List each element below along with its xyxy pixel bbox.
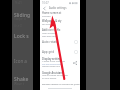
staticText: new apps here — [42, 35, 56, 38]
staticText: Icon a — [14, 58, 27, 64]
staticText: Shake — [14, 76, 29, 83]
button[interactable]: App grid — [40, 49, 80, 55]
staticText: Sliding — [14, 12, 31, 19]
staticText: Home screen st — [42, 11, 62, 15]
button[interactable]: Wallpaper & sty — [40, 19, 80, 26]
staticText: Display setting — [42, 57, 62, 61]
staticText: on your display — [42, 77, 57, 80]
staticText: Lock s — [14, 33, 29, 40]
button[interactable]: Back — [42, 6, 46, 10]
staticText: ● ● ▮ ▮ — [69, 1, 78, 4]
staticText: Standard — [42, 15, 51, 18]
staticText: support.google.com — [42, 65, 61, 68]
staticText: How to change the settings — [42, 74, 68, 77]
staticText: Set style — [42, 23, 50, 26]
staticText: App grid — [42, 50, 55, 54]
staticText: Audio settings — [49, 6, 67, 10]
button[interactable]: Auto rotate — [40, 39, 80, 45]
staticText: Random details on The firm by Johns — [42, 83, 80, 86]
staticText: Add icon to Ho — [42, 28, 61, 32]
button[interactable]: Share — [72, 60, 78, 66]
staticText: Wave t — [14, 82, 25, 86]
button[interactable]: Add icon to Ho — [40, 28, 80, 35]
staticText: out and phone settin — [42, 63, 62, 66]
staticText: Auto rotate — [42, 40, 58, 44]
staticText: Wallpaper & sty — [42, 19, 62, 23]
staticText: When installing — [42, 32, 57, 35]
staticText: Google Assistant — [42, 71, 63, 75]
button[interactable]: Home screen st — [40, 11, 80, 18]
staticText: 10:07 — [42, 1, 49, 5]
staticText: A guide to the screen lay — [42, 60, 66, 63]
